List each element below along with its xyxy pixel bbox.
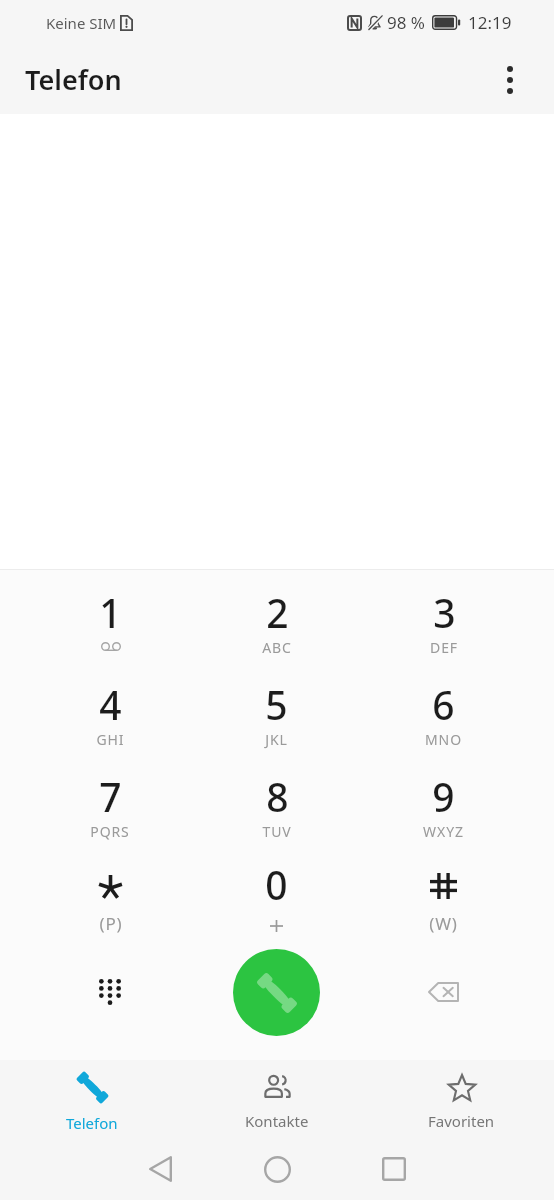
staticText: 12:19 bbox=[468, 11, 512, 34]
button[interactable]: (P) bbox=[27, 858, 193, 936]
button[interactable]: 9 bbox=[360, 766, 527, 858]
staticText: 4 bbox=[99, 678, 122, 731]
button[interactable]: (W) bbox=[360, 858, 527, 936]
staticText: 6 bbox=[432, 678, 455, 731]
staticText: 0 bbox=[265, 858, 288, 911]
button[interactable]: 1 bbox=[27, 582, 193, 674]
staticText: TUV bbox=[262, 822, 292, 841]
button[interactable]: 0 bbox=[193, 858, 360, 936]
staticText: Keine SIM bbox=[46, 13, 117, 33]
button[interactable]: Kontakte bbox=[184, 1060, 369, 1145]
staticText: 7 bbox=[99, 770, 122, 823]
staticText: (P) bbox=[99, 912, 123, 935]
button[interactable]: Telefon bbox=[0, 1060, 184, 1145]
staticText: 9 bbox=[432, 770, 455, 823]
button[interactable]: Favoriten bbox=[369, 1060, 554, 1145]
staticText: Kontakte bbox=[245, 1111, 309, 1131]
staticText: GHI bbox=[96, 730, 125, 749]
staticText: PQRS bbox=[90, 822, 130, 841]
button[interactable]: Recents bbox=[368, 1143, 420, 1195]
staticText: Favoriten bbox=[428, 1111, 495, 1131]
staticText: (W) bbox=[429, 912, 458, 935]
staticText: 8 bbox=[266, 770, 289, 823]
button[interactable]: Home bbox=[251, 1143, 303, 1195]
button[interactable]: 5 bbox=[193, 674, 360, 766]
staticText: 2 bbox=[266, 586, 289, 639]
staticText: DEF bbox=[430, 638, 458, 657]
button[interactable]: 3 bbox=[360, 582, 527, 674]
button[interactable]: Back bbox=[134, 1143, 186, 1195]
button[interactable]: Keypad bbox=[27, 937, 193, 1047]
staticText: Telefon bbox=[66, 1113, 118, 1133]
button[interactable]: 8 bbox=[193, 766, 360, 858]
button[interactable]: Delete bbox=[360, 937, 527, 1047]
staticText: JKL bbox=[265, 730, 288, 749]
staticText: 1 bbox=[99, 586, 122, 639]
button[interactable]: 4 bbox=[27, 674, 193, 766]
staticText: 3 bbox=[433, 586, 456, 639]
staticText: ABC bbox=[262, 638, 292, 657]
staticText: WXYZ bbox=[423, 822, 464, 841]
button[interactable]: 6 bbox=[360, 674, 527, 766]
staticText: 98 % bbox=[387, 11, 425, 34]
button[interactable]: Call bbox=[233, 949, 320, 1036]
staticText: Telefon bbox=[25, 61, 122, 98]
button[interactable]: 2 bbox=[193, 582, 360, 674]
button[interactable]: 7 bbox=[27, 766, 193, 858]
staticText: MNO bbox=[425, 730, 462, 749]
staticText: 5 bbox=[265, 678, 288, 731]
button[interactable]: More options bbox=[482, 52, 538, 108]
